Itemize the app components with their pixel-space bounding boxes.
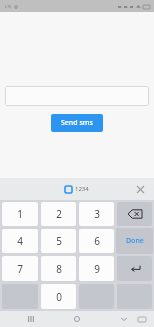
button[interactable]: Enter xyxy=(117,256,152,281)
button[interactable]: 6 xyxy=(79,229,114,253)
button[interactable]: 3 xyxy=(79,202,114,226)
button[interactable] xyxy=(5,86,149,106)
staticText: 6 xyxy=(94,234,100,248)
staticText: 5 xyxy=(56,234,62,248)
staticText: 1234 xyxy=(75,185,89,193)
staticText: Done xyxy=(126,236,144,246)
button[interactable]: Done xyxy=(116,228,153,254)
staticText: 3 xyxy=(94,207,100,221)
button[interactable]: Home xyxy=(70,312,84,326)
staticText: 9 xyxy=(94,262,100,276)
staticText: 1 xyxy=(17,207,23,221)
button[interactable]: Recent apps xyxy=(24,312,38,326)
button[interactable]: 2 xyxy=(41,202,76,226)
staticText: 7 xyxy=(17,262,23,276)
button[interactable]: 4 xyxy=(2,229,38,253)
button[interactable]: 9 xyxy=(79,256,114,281)
button[interactable]: 7 xyxy=(2,256,38,281)
button[interactable]: 0 xyxy=(41,284,76,309)
button[interactable]: Hide keyboard xyxy=(118,313,130,325)
staticText: 0 xyxy=(56,290,62,304)
staticText: 8 xyxy=(56,262,62,276)
button[interactable]: 1 xyxy=(2,202,38,226)
button[interactable]: Send sms xyxy=(51,114,103,132)
staticText: LTE xyxy=(5,4,12,9)
button[interactable]: 5 xyxy=(41,229,76,253)
button[interactable]: Change keyboard xyxy=(136,313,148,325)
button[interactable]: 8 xyxy=(41,256,76,281)
button[interactable]: Backspace xyxy=(117,202,152,226)
staticText: 4 xyxy=(17,234,23,248)
staticText: 2 xyxy=(56,207,62,221)
staticText: Send sms xyxy=(61,118,93,128)
button[interactable]: Close suggestion xyxy=(133,182,147,196)
